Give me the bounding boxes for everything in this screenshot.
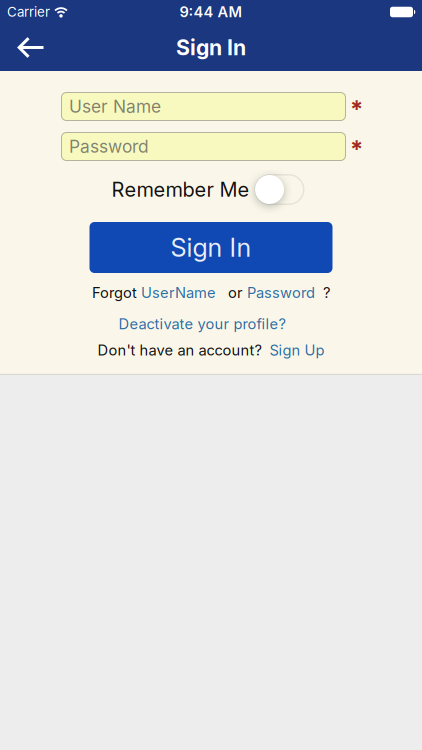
staticText: 9:44 AM — [179, 3, 242, 21]
staticText: Deactivate your profile? — [118, 315, 285, 333]
button[interactable]: User Name — [61, 92, 346, 121]
staticText: * — [350, 134, 363, 163]
button[interactable]: Sign Up — [269, 342, 324, 359]
staticText: ? — [315, 284, 330, 301]
staticText: Password — [247, 284, 315, 301]
staticText: Don't have an account? — [97, 342, 261, 359]
staticText: Sign In — [170, 233, 251, 262]
button[interactable]: Password — [61, 132, 346, 161]
staticText: Sign Up — [269, 342, 324, 359]
staticText: Forgot — [92, 284, 141, 301]
staticText: Remember Me — [111, 178, 249, 201]
staticText: Sign In — [176, 35, 246, 60]
button[interactable]: UserName — [141, 284, 216, 301]
staticText: User Name — [69, 96, 161, 117]
staticText: * — [350, 94, 363, 123]
button[interactable]: Back — [0, 24, 44, 71]
staticText: Password — [69, 136, 149, 157]
button[interactable]: Deactivate your profile? — [118, 315, 285, 333]
button[interactable]: Password — [247, 284, 315, 301]
staticText: UserName — [141, 284, 216, 301]
button[interactable]: Remember Me — [254, 174, 304, 205]
staticText: or — [216, 284, 247, 301]
button[interactable]: Sign In — [89, 222, 332, 273]
staticText: Carrier — [7, 4, 50, 20]
